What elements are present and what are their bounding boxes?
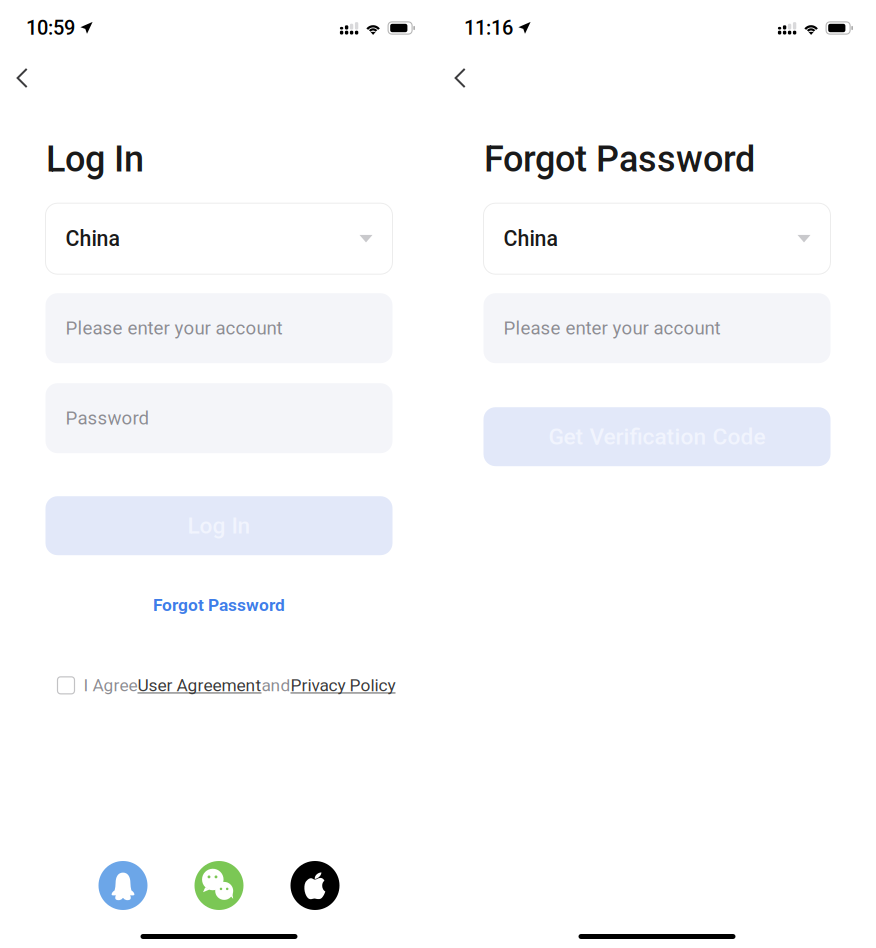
- staticText: Log In: [46, 138, 144, 180]
- button[interactable]: Forgot Password: [119, 594, 319, 616]
- staticText: 10:59: [26, 16, 75, 40]
- staticText: Forgot Password: [153, 595, 285, 615]
- button[interactable]: Sign in with QQ: [98, 861, 147, 910]
- button[interactable]: Privacy Policy: [290, 675, 395, 695]
- button[interactable]: Get Verification Code: [483, 407, 830, 466]
- staticText: Get Verification Code: [548, 423, 765, 450]
- button[interactable]: User Agreement: [137, 675, 261, 695]
- staticText: Please enter your account: [65, 317, 282, 339]
- staticText: China: [503, 226, 558, 251]
- button[interactable]: I Agree: [57, 677, 74, 694]
- button[interactable]: China: [483, 203, 830, 274]
- staticText: China: [65, 226, 120, 251]
- staticText: Please enter your account: [503, 317, 720, 339]
- button[interactable]: Sign in with Apple: [290, 861, 339, 910]
- staticText: Privacy Policy: [290, 675, 395, 695]
- staticText: Log In: [187, 512, 250, 539]
- button[interactable]: Back: [438, 56, 482, 100]
- staticText: Forgot Password: [484, 138, 755, 180]
- staticText: Password: [65, 407, 149, 429]
- staticText: I Agree: [83, 675, 137, 695]
- button[interactable]: China: [45, 203, 392, 274]
- button[interactable]: Sign in with WeChat: [194, 861, 243, 910]
- staticText: 11:16: [464, 16, 513, 40]
- staticText: User Agreement: [137, 675, 261, 695]
- staticText: and: [261, 675, 290, 695]
- button[interactable]: Back: [0, 56, 44, 100]
